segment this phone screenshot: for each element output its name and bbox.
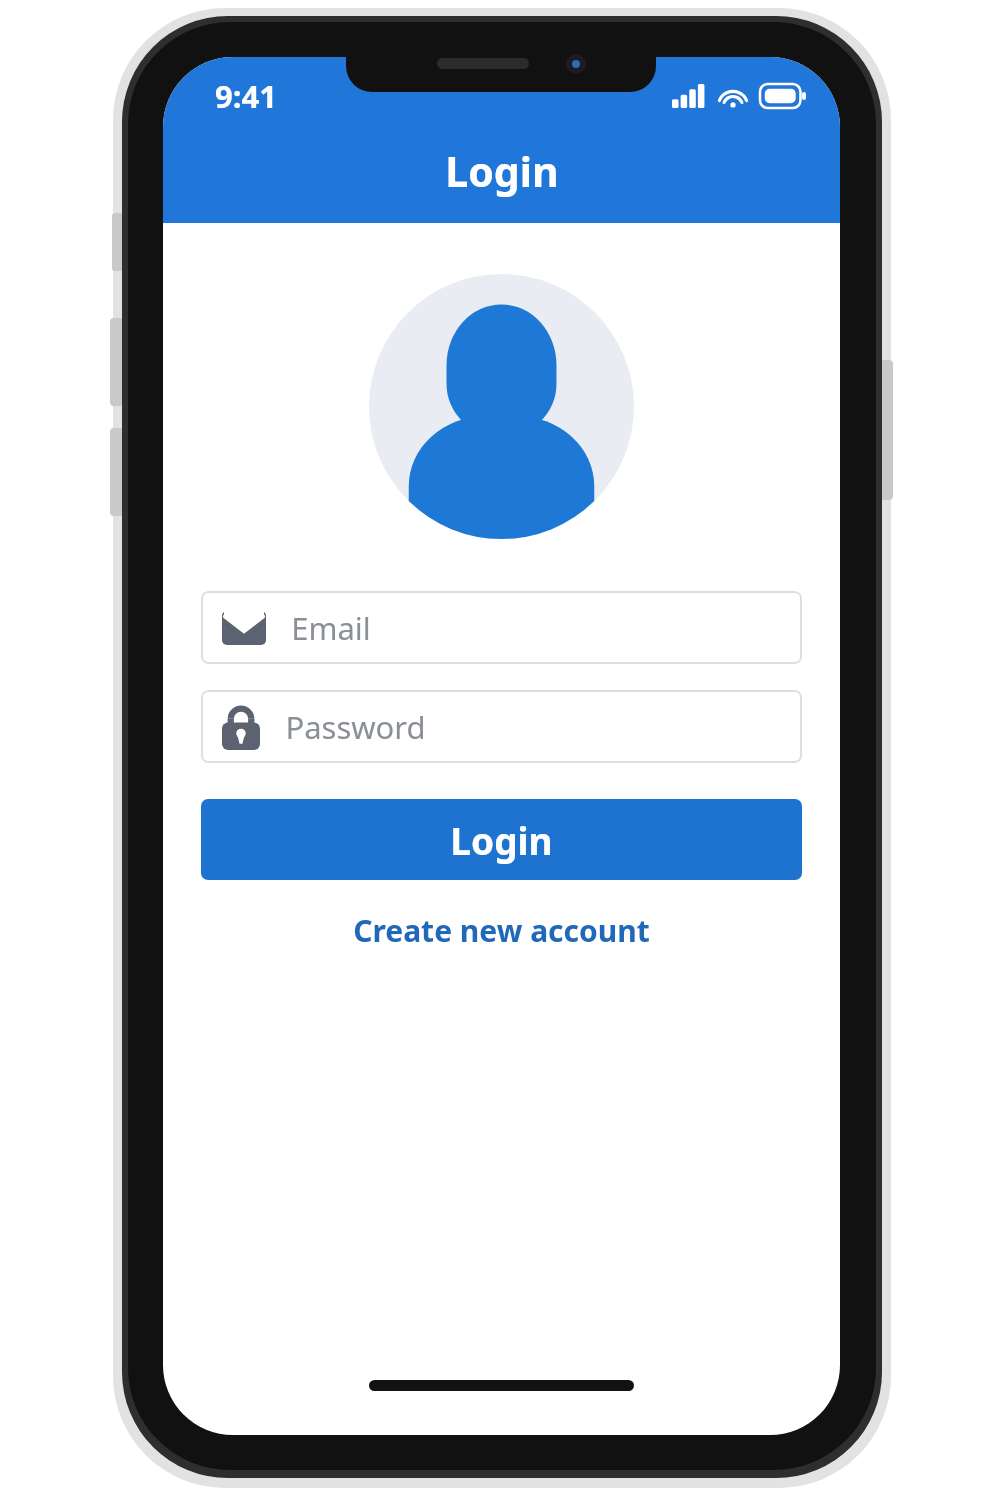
staticText: 9:41 bbox=[215, 75, 277, 117]
button[interactable]: Password bbox=[201, 690, 802, 763]
button[interactable]: Create new account bbox=[339, 902, 664, 959]
staticText: Login bbox=[450, 815, 553, 865]
staticText: Email bbox=[291, 607, 371, 649]
button[interactable]: Login bbox=[201, 799, 802, 880]
button[interactable]: Email bbox=[201, 591, 802, 664]
staticText: Login bbox=[445, 143, 559, 199]
staticText: Create new account bbox=[353, 910, 650, 951]
staticText: Password bbox=[285, 706, 426, 748]
